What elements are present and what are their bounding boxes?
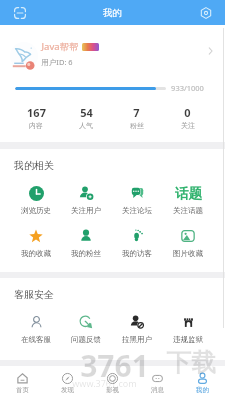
staticText: 内容 [29, 121, 43, 130]
staticText: 我的访客 [122, 249, 152, 258]
button[interactable]: 拉黑用户 [111, 314, 162, 344]
button[interactable]: 发现 [45, 366, 90, 400]
staticText: 关注用户 [71, 206, 101, 215]
staticText: 话题 [175, 185, 202, 201]
staticText: 我的 [103, 7, 122, 19]
button[interactable]: 54 [61, 105, 111, 130]
staticText: 我的 [196, 386, 209, 394]
staticText: 违规监狱 [173, 335, 203, 344]
button[interactable]: 问题反馈 [61, 314, 111, 344]
staticText: 首页 [16, 386, 29, 394]
button[interactable]: 我的 [180, 366, 225, 400]
staticText: 发现 [61, 386, 74, 394]
staticText: 关注 [181, 121, 195, 130]
staticText: 下载 [166, 347, 216, 378]
staticText: 0 [184, 105, 191, 120]
staticText: 3761 [80, 345, 149, 386]
button[interactable]: 167 [11, 105, 61, 130]
staticText: 933/1000 [171, 83, 204, 93]
button[interactable]: Scan QR code [10, 3, 30, 23]
staticText: 关注论坛 [122, 206, 152, 215]
button[interactable]: 关注论坛 [111, 185, 162, 215]
button[interactable]: 首页 [0, 366, 45, 400]
button[interactable]: 浏览历史 [11, 185, 61, 215]
button[interactable]: Java帮帮 [0, 25, 225, 73]
staticText: 问题反馈 [71, 335, 101, 344]
staticText: 我的相关 [14, 159, 54, 172]
button[interactable]: 关注用户 [61, 185, 111, 215]
button[interactable]: 影视 [90, 366, 135, 400]
button[interactable]: 消息 [135, 366, 180, 400]
button[interactable]: Settings [196, 3, 216, 23]
staticText: Java帮帮 [41, 40, 79, 53]
staticText: 拉黑用户 [122, 335, 152, 344]
button[interactable]: 话题 [162, 185, 213, 215]
staticText: www.3761.com [72, 377, 137, 389]
button[interactable]: 0 [162, 105, 213, 130]
staticText: 人气 [79, 121, 93, 130]
staticText: 我的粉丝 [71, 249, 101, 258]
staticText: 图片收藏 [173, 249, 203, 258]
button[interactable]: 违规监狱 [162, 314, 213, 344]
staticText: 消息 [151, 386, 164, 394]
staticText: 我的收藏 [21, 249, 51, 258]
button[interactable]: 7 [111, 105, 162, 130]
button[interactable]: 我的访客 [111, 228, 162, 258]
staticText: 浏览历史 [21, 206, 51, 215]
staticText: 7 [133, 105, 140, 120]
staticText: 54 [80, 105, 93, 120]
staticText: 粉丝 [130, 121, 144, 130]
button[interactable]: 我的收藏 [11, 228, 61, 258]
button[interactable]: 我的粉丝 [61, 228, 111, 258]
button[interactable]: 在线客服 [11, 314, 61, 344]
staticText: 客服安全 [14, 288, 54, 301]
staticText: 在线客服 [21, 335, 51, 344]
staticText: 影视 [106, 386, 119, 394]
button[interactable]: 图片收藏 [162, 228, 213, 258]
staticText: 关注话题 [173, 206, 203, 215]
staticText: 167 [27, 105, 46, 120]
staticText: 用户ID: 6 [41, 57, 73, 67]
